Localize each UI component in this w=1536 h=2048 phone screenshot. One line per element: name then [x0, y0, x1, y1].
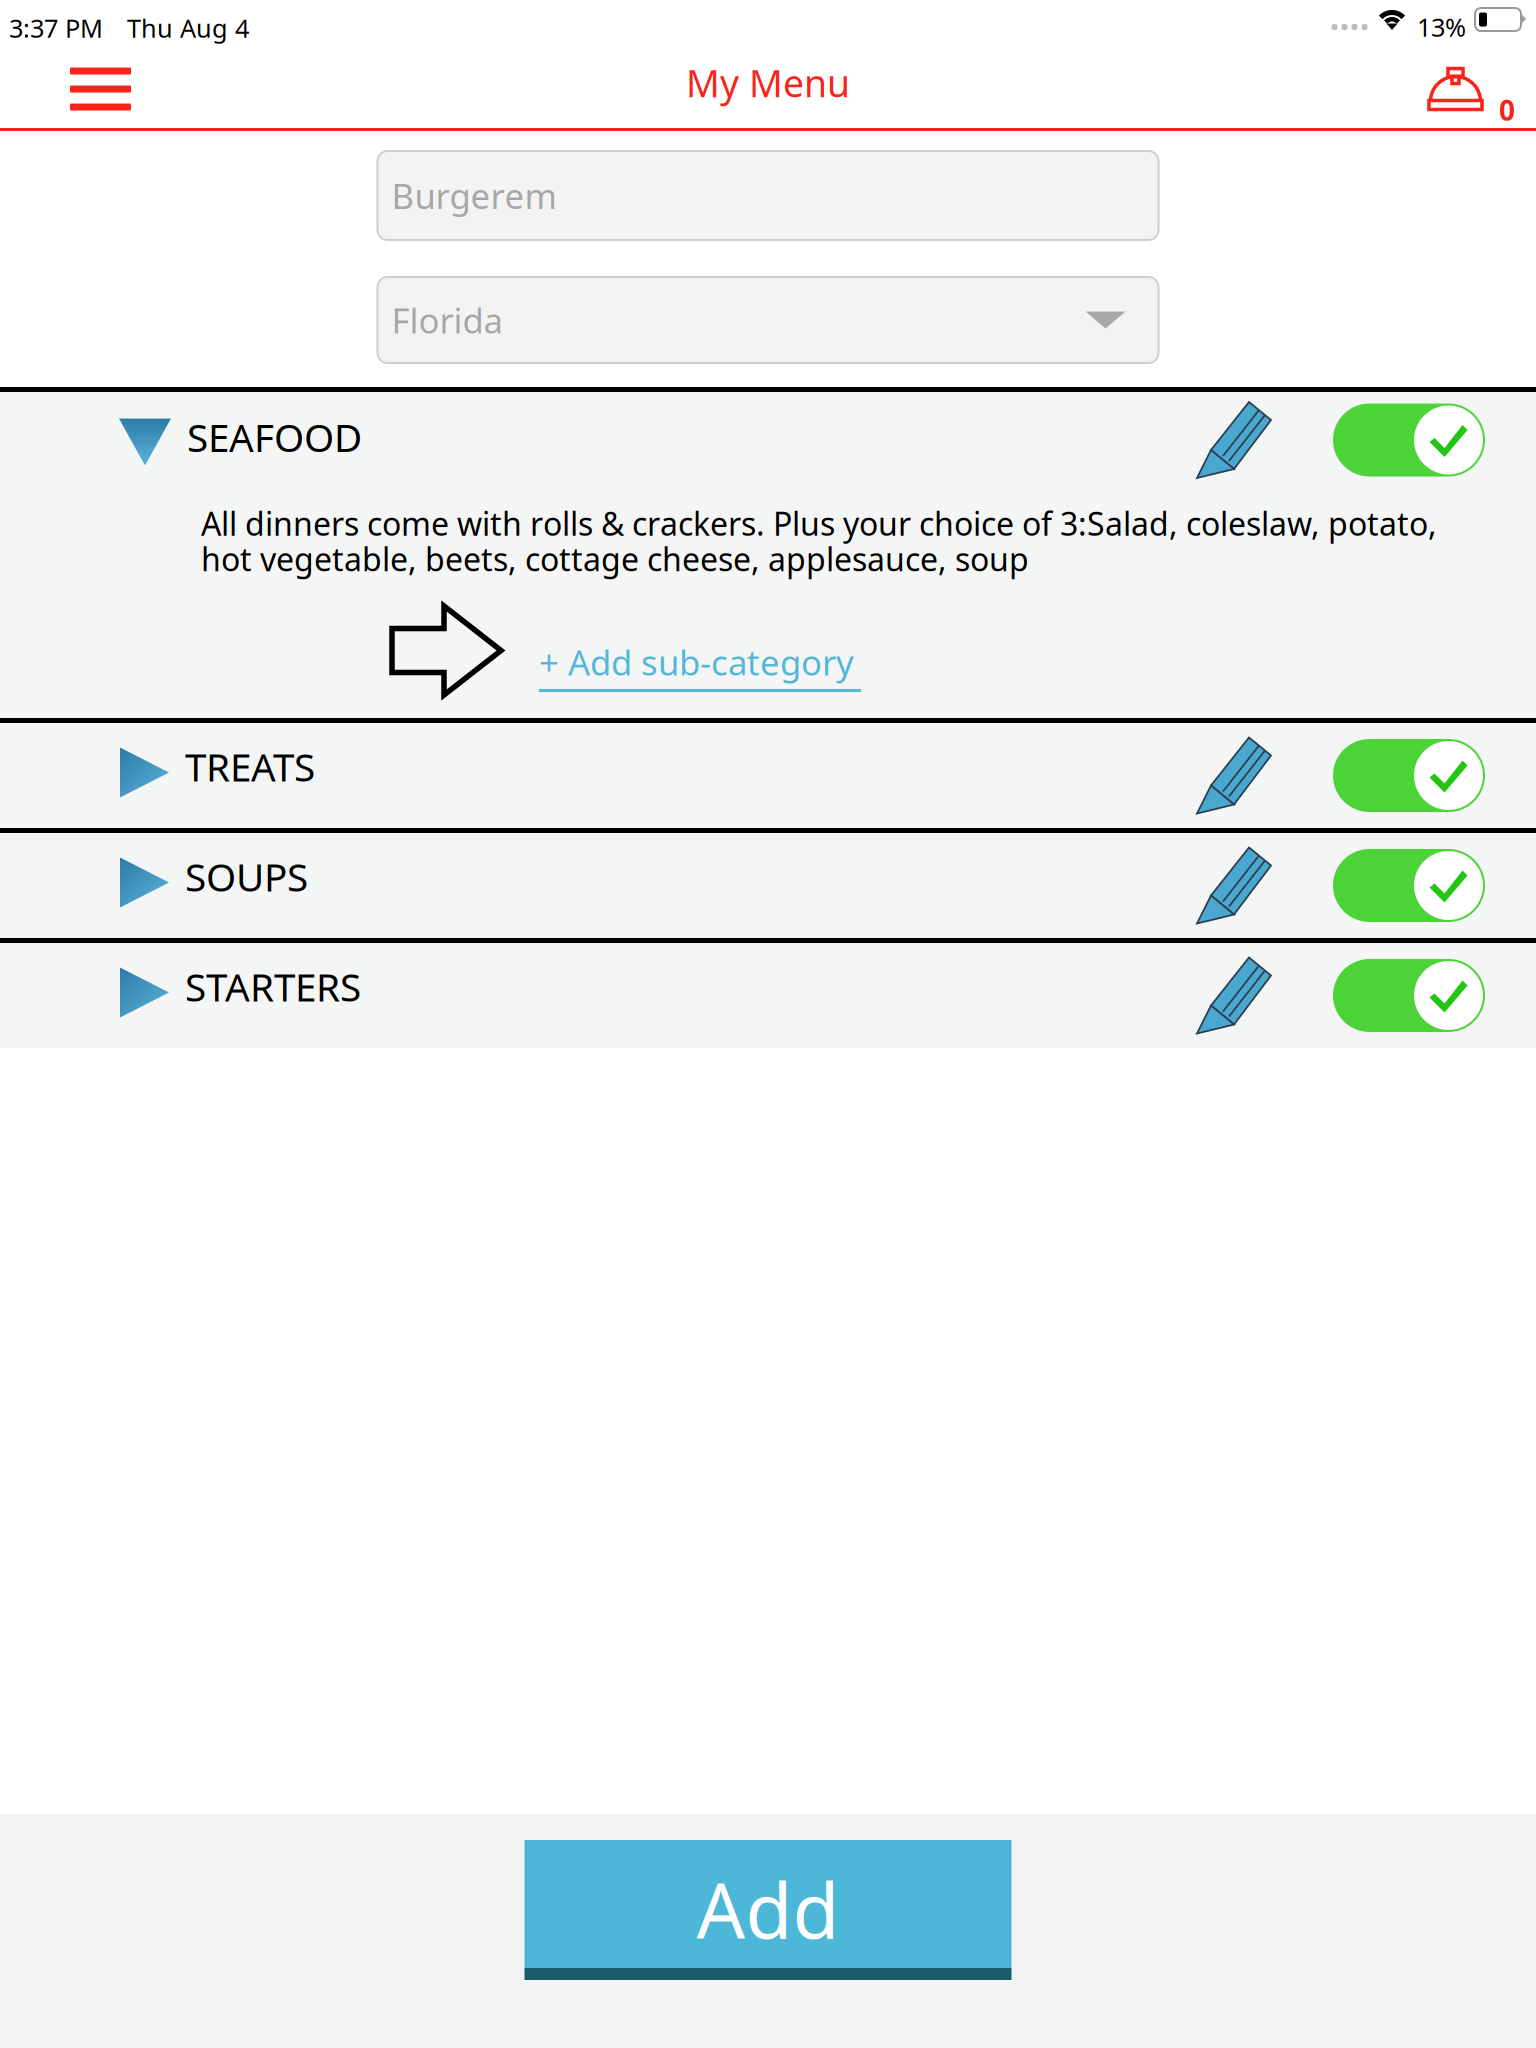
- button[interactable]: Menu: [38, 48, 163, 130]
- button[interactable]: TREATS: [0, 723, 1536, 828]
- staticText: Florida: [391, 297, 502, 343]
- staticText: 13%: [1417, 10, 1466, 44]
- button[interactable]: Burgerem: [377, 151, 1158, 240]
- staticText: 3:37 PM: [9, 11, 103, 45]
- staticText: My Menu: [686, 58, 850, 108]
- staticText: Add: [696, 1858, 839, 1959]
- staticText: hot vegetable, beets, cottage cheese, ap…: [201, 537, 1029, 580]
- button[interactable]: Add: [524, 1840, 1011, 1980]
- staticText: SOUPS: [185, 851, 308, 902]
- staticText: SEAFOOD: [187, 411, 362, 463]
- staticText: Thu Aug 4: [127, 11, 249, 45]
- button[interactable]: + Add sub-category: [539, 639, 869, 692]
- staticText: Burgerem: [391, 172, 556, 218]
- staticText: All dinners come with rolls & crackers. …: [201, 502, 1437, 544]
- staticText: STARTERS: [185, 961, 361, 1012]
- staticText: 0: [1499, 91, 1515, 129]
- button[interactable]: Orders: [1427, 57, 1527, 121]
- staticText: TREATS: [185, 741, 315, 792]
- button[interactable]: Florida: [377, 277, 1158, 363]
- button[interactable]: SEAFOOD: [0, 392, 1536, 488]
- button[interactable]: STARTERS: [0, 943, 1536, 1048]
- button[interactable]: SOUPS: [0, 833, 1536, 938]
- staticText: + Add sub-category: [539, 639, 854, 685]
